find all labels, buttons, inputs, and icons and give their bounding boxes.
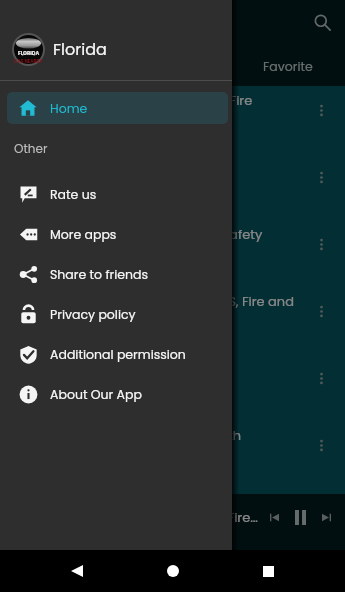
staticText: More apps xyxy=(50,226,117,243)
button[interactable]: Previous xyxy=(261,504,287,530)
button[interactable]: More apps xyxy=(0,214,232,254)
button[interactable]: Next xyxy=(313,504,339,530)
staticText: Alachua County Sheriff, EMS, and Fire Re… xyxy=(12,508,261,526)
staticText: About Our App xyxy=(50,386,142,403)
button[interactable]: More options xyxy=(307,364,335,392)
button[interactable]: More options xyxy=(307,230,335,258)
button[interactable]: More options xyxy=(307,431,335,459)
staticText: FLORIDA xyxy=(18,50,40,57)
staticText: Privacy policy xyxy=(50,306,136,323)
button[interactable]: Share to friends xyxy=(0,254,232,294)
button[interactable]: Recent xyxy=(115,46,230,86)
button[interactable]: Additional permission xyxy=(0,334,232,374)
staticText: Home xyxy=(50,100,88,117)
staticText: Online xyxy=(14,178,49,193)
staticText: Bay County EMS, Fire and Public Safety xyxy=(14,225,263,243)
button[interactable]: Recents xyxy=(250,553,286,589)
button[interactable]: About Our App xyxy=(0,374,232,414)
button[interactable]: Search xyxy=(305,5,339,39)
button[interactable]: Favorite xyxy=(230,46,345,86)
button[interactable]: Brevard County Fire and EMS xyxy=(0,354,345,421)
button[interactable]: Bay County EMS, Fire and Public Safety xyxy=(0,220,345,287)
staticText: Online xyxy=(14,111,49,126)
button[interactable]: All xyxy=(0,46,115,86)
button[interactable]: Home xyxy=(155,553,191,589)
staticText: Broward Sheriff, Fire Dispatch North xyxy=(14,426,242,444)
staticText: Favorite xyxy=(263,58,313,75)
button[interactable]: More options xyxy=(307,163,335,191)
staticText: Online xyxy=(14,379,49,394)
staticText: Bradford County Sheriff Police EMS, Fire… xyxy=(14,292,294,310)
button[interactable]: Home xyxy=(7,92,228,124)
button[interactable]: Rate us xyxy=(0,174,232,214)
staticText: Share to friends xyxy=(50,266,149,283)
button[interactable]: Broward Sheriff, Fire Dispatch North xyxy=(0,421,345,488)
staticText: Other xyxy=(14,140,48,157)
staticText: Additional permission xyxy=(50,346,186,363)
staticText: GAS NEARBY xyxy=(14,58,43,64)
button[interactable]: Pause xyxy=(287,504,313,530)
button[interactable]: Bradford County Sheriff Police EMS, Fire… xyxy=(0,287,345,354)
staticText: Alachua County Sheriff, EMS, and Fire xyxy=(14,91,253,109)
button[interactable]: Baker County Sheriff, Fire, EMS xyxy=(0,153,345,220)
button[interactable]: Back xyxy=(59,553,95,589)
button[interactable]: Alachua County Sheriff, EMS, and Fire xyxy=(0,86,345,153)
staticText: Brevard County Fire and EMS xyxy=(14,359,200,377)
staticText: Florida xyxy=(53,38,107,60)
button[interactable]: More options xyxy=(307,297,335,325)
button[interactable]: More options xyxy=(307,96,335,124)
button[interactable]: Privacy policy xyxy=(0,294,232,334)
staticText: Online xyxy=(14,312,49,327)
staticText: Rate us xyxy=(50,186,97,203)
